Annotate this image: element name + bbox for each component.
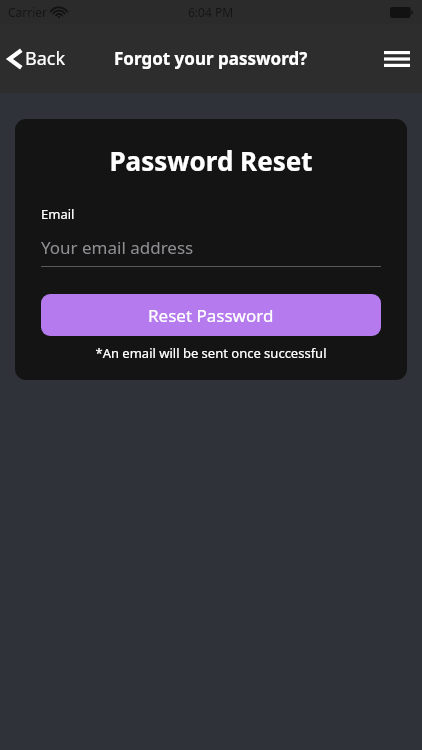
button[interactable]: Back xyxy=(0,40,76,77)
button[interactable]: Your email address xyxy=(41,236,381,267)
staticText: 6:04 PM xyxy=(188,4,234,20)
staticText: Back xyxy=(25,46,66,71)
button[interactable]: Menu xyxy=(372,37,422,81)
staticText: Email xyxy=(41,205,75,223)
staticText: Password Reset xyxy=(41,143,381,178)
staticText: Forgot your password? xyxy=(114,47,308,70)
staticText: *An email will be sent once successful xyxy=(41,344,381,362)
staticText: Your email address xyxy=(41,236,194,259)
button[interactable]: Reset Password xyxy=(41,294,381,336)
staticText: Carrier xyxy=(8,4,48,20)
staticText: Reset Password xyxy=(148,304,274,327)
